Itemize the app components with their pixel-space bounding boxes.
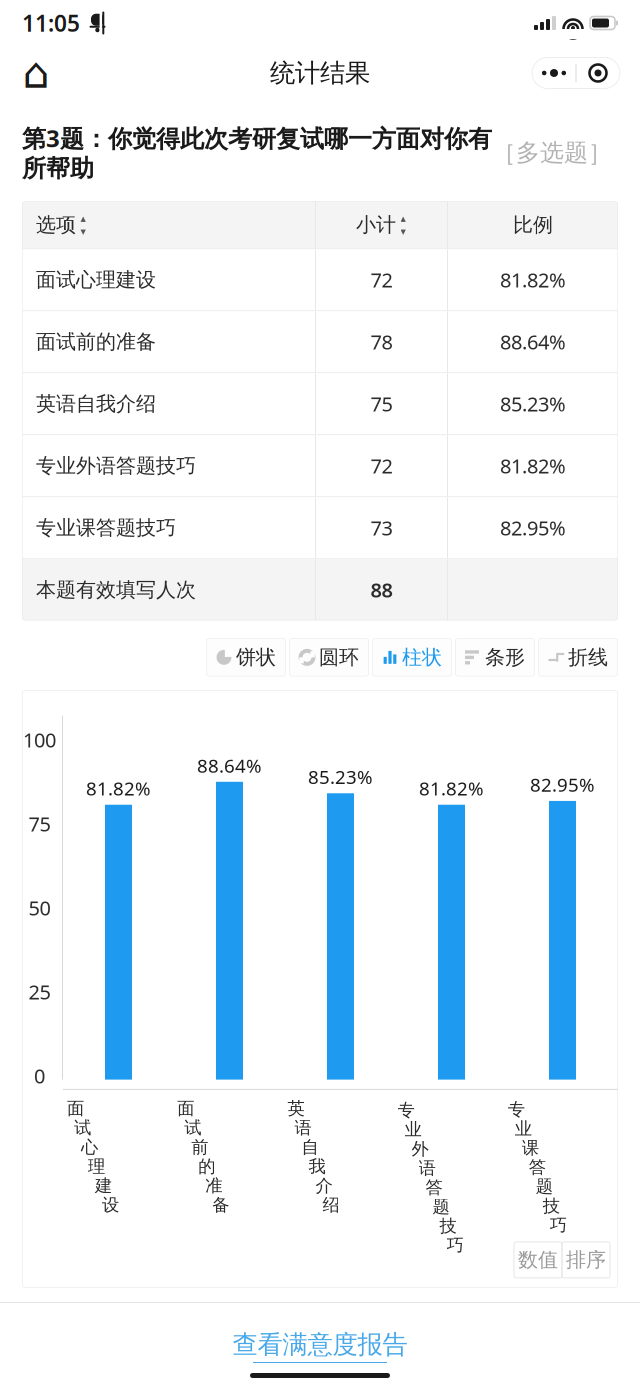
staticText: 专业课答题技巧 — [36, 516, 176, 540]
button[interactable]: 圆环 — [289, 638, 369, 676]
staticText: 82.95% — [500, 515, 566, 541]
staticText: 业 — [515, 1118, 532, 1139]
staticText: 建 — [95, 1175, 112, 1196]
staticText: 72 — [370, 453, 392, 479]
staticText: 设 — [102, 1194, 119, 1216]
staticText: 英 — [287, 1098, 304, 1119]
staticText: 面 — [177, 1098, 194, 1119]
staticText: ⌂ — [22, 49, 49, 97]
staticText: 绍 — [322, 1194, 339, 1216]
staticText: 统计结果 — [270, 57, 370, 88]
staticText: 介 — [315, 1175, 332, 1196]
staticText: 面试心理建设 — [36, 268, 156, 292]
button[interactable]: Home — [20, 57, 52, 89]
button[interactable]: 折线 — [538, 638, 618, 676]
staticText: 心 — [81, 1136, 98, 1158]
button[interactable]: 条形 — [455, 638, 535, 676]
button[interactable]: 柱状 — [372, 638, 452, 676]
staticText: 85.23% — [500, 391, 566, 417]
staticText: 小计 — [356, 213, 396, 237]
staticText: 题 — [536, 1176, 553, 1197]
staticText: 答 — [529, 1157, 546, 1178]
staticText: 数值 — [518, 1248, 558, 1272]
staticText: 技 — [543, 1195, 560, 1216]
staticText: 85.23% — [308, 764, 373, 789]
staticText: 自 — [301, 1136, 318, 1158]
staticText: 82.95% — [530, 772, 595, 797]
staticText: 备 — [212, 1194, 229, 1216]
staticText: 选项 — [36, 213, 76, 237]
staticText: 语 — [419, 1157, 436, 1179]
staticText: 业 — [405, 1119, 422, 1140]
button[interactable]: 排序 — [562, 1242, 610, 1278]
button[interactable]: More options — [532, 57, 575, 88]
staticText: 技 — [440, 1215, 457, 1237]
staticText: 题 — [433, 1196, 450, 1217]
staticText: 排序 — [566, 1248, 606, 1272]
staticText: 面试前的准备 — [36, 330, 156, 354]
staticText: 比例 — [513, 213, 553, 237]
staticText: 答 — [426, 1177, 443, 1198]
staticText: 73 — [370, 515, 392, 541]
staticText: 课 — [522, 1137, 539, 1159]
staticText: 第3题：你觉得此次考研复试哪一方面对你有所帮助 — [22, 122, 492, 183]
staticText: 75 — [370, 391, 392, 417]
staticText: 100 — [23, 726, 56, 753]
staticText: 81.82% — [500, 267, 566, 293]
staticText: 查看满意度报告 — [232, 1329, 407, 1360]
button[interactable]: 数值 — [514, 1242, 562, 1278]
button[interactable]: 查看满意度报告 — [0, 1303, 640, 1373]
staticText: 专 — [398, 1100, 415, 1121]
staticText: 78 — [370, 329, 392, 355]
staticText: ▾ — [400, 225, 405, 237]
button[interactable]: Close — [576, 57, 619, 88]
staticText: 专 — [508, 1099, 525, 1120]
staticText: 81.82% — [500, 453, 566, 479]
staticText: 本题有效填写人次 — [36, 578, 196, 602]
staticText: ［多选题］ — [492, 138, 612, 167]
staticText: 语 — [294, 1117, 311, 1138]
staticText: 巧 — [550, 1214, 567, 1236]
staticText: 试 — [184, 1117, 201, 1138]
staticText: 我 — [308, 1156, 325, 1177]
staticText: 柱状 — [402, 645, 442, 670]
staticText: 72 — [370, 267, 392, 293]
staticText: ▴ — [80, 212, 85, 224]
staticText: 50 — [28, 894, 50, 921]
staticText: 25 — [28, 978, 50, 1005]
staticText: ▴ — [400, 212, 405, 224]
staticText: 折线 — [568, 645, 608, 670]
staticText: 11:05 — [22, 8, 80, 38]
staticText: 外 — [412, 1138, 429, 1159]
staticText: 圆环 — [319, 645, 359, 670]
staticText: 75 — [28, 810, 50, 837]
staticText: 准 — [205, 1175, 222, 1196]
staticText: 88.64% — [500, 329, 566, 355]
staticText: 专业外语答题技巧 — [36, 454, 196, 478]
staticText: 0 — [34, 1062, 45, 1089]
staticText: ▾ — [80, 225, 85, 237]
staticText: 试 — [74, 1117, 91, 1138]
staticText: 理 — [88, 1156, 105, 1177]
staticText: 的 — [198, 1156, 215, 1177]
staticText: 81.82% — [86, 776, 151, 801]
staticText: 英语自我介绍 — [36, 392, 156, 416]
staticText: 81.82% — [419, 776, 484, 801]
staticText: 巧 — [447, 1235, 464, 1256]
staticText: 88 — [370, 577, 392, 603]
staticText: 饼状 — [236, 645, 276, 670]
staticText: 前 — [191, 1136, 208, 1158]
button[interactable]: 饼状 — [206, 638, 286, 676]
staticText: 88.64% — [197, 753, 262, 778]
staticText: 面 — [67, 1098, 84, 1119]
staticText: 条形 — [485, 645, 525, 670]
